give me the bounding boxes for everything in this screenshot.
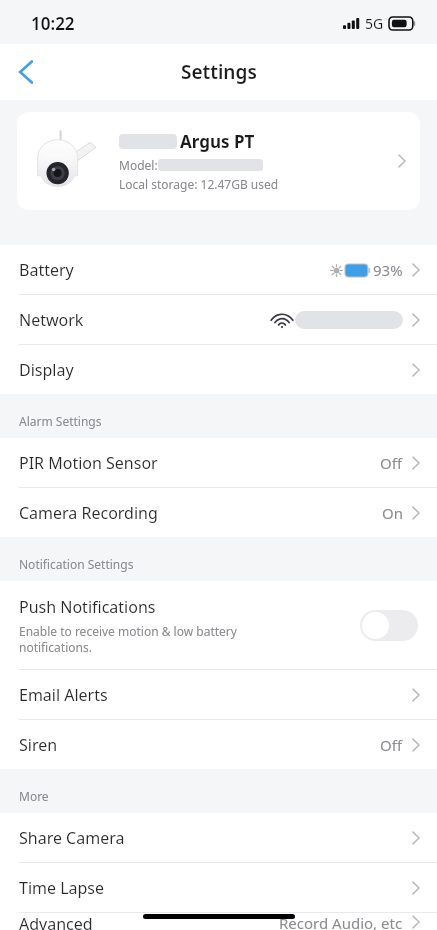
staticText: Siren	[19, 734, 380, 756]
button[interactable]: Battery	[0, 245, 437, 294]
staticText: Time Lapse	[19, 877, 412, 899]
staticText: More	[19, 788, 49, 804]
button[interactable]: Camera Recording	[0, 488, 437, 537]
staticText: Push Notifications	[19, 596, 156, 618]
staticText: Advanced	[19, 913, 279, 930]
button[interactable]: Display	[0, 345, 437, 394]
button[interactable]: Network	[0, 295, 437, 344]
staticText: Off	[380, 735, 403, 755]
staticText: Display	[19, 359, 412, 381]
button[interactable]: PIR Motion Sensor	[0, 438, 437, 487]
button[interactable]: Push Notifications	[0, 581, 437, 669]
button[interactable]: Back	[0, 46, 52, 98]
staticText: Settings	[181, 59, 257, 85]
staticText: On	[382, 503, 403, 523]
staticText: 10:22	[31, 12, 75, 35]
staticText: Notification Settings	[19, 556, 134, 572]
staticText: Email Alerts	[19, 684, 412, 706]
staticText: Record Audio, etc	[279, 913, 403, 930]
staticText: Camera Recording	[19, 502, 382, 524]
button[interactable]: Advanced	[0, 913, 437, 930]
button[interactable]: Email Alerts	[0, 670, 437, 719]
button[interactable]: Share Camera	[0, 813, 437, 862]
staticText: 93%	[373, 260, 403, 280]
button[interactable]: Argus PT	[17, 112, 420, 210]
button[interactable]: Time Lapse	[0, 863, 437, 912]
staticText: Share Camera	[19, 827, 412, 849]
staticText: Model:	[119, 157, 158, 173]
staticText: Argus PT	[180, 130, 255, 153]
staticText: 5G	[365, 14, 384, 33]
staticText: Alarm Settings	[19, 413, 102, 429]
staticText: Off	[380, 453, 403, 473]
staticText: Network	[19, 309, 272, 331]
staticText: Battery	[19, 259, 330, 281]
staticText: PIR Motion Sensor	[19, 452, 380, 474]
staticText: Enable to receive motion & low battery n…	[19, 623, 237, 655]
staticText: Local storage: 12.47GB used	[119, 176, 279, 192]
button[interactable]: Siren	[0, 720, 437, 769]
button[interactable]: Push Notifications toggle	[360, 610, 418, 641]
